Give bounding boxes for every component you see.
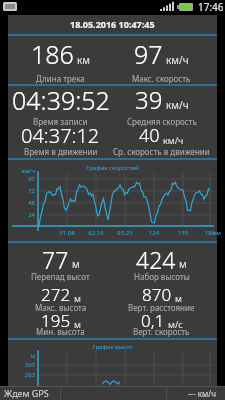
staticText: 93.23 (111, 229, 139, 237)
button[interactable]: 870 (106, 283, 217, 312)
button[interactable]: 97 (106, 37, 217, 74)
staticText: Время записи (33, 116, 88, 127)
staticText: 0,1 (141, 309, 165, 332)
staticText: км (203, 229, 225, 237)
staticText: км (77, 53, 90, 67)
staticText: м (179, 257, 187, 271)
staticText: м/с (168, 318, 183, 330)
staticText: 186 (31, 37, 74, 71)
button[interactable]: 186 (8, 37, 113, 74)
staticText: График скоростей (8, 164, 217, 172)
button[interactable]: 272 (8, 283, 113, 312)
button[interactable]: 0,1 (106, 309, 217, 338)
staticText: Длина трека (36, 73, 85, 84)
staticText: км/ч (166, 98, 189, 112)
staticText: Макс. высота (35, 302, 87, 313)
staticText: 24 (9, 211, 35, 219)
staticText: 48 (9, 199, 35, 207)
button[interactable]: Ждем GPS (4, 387, 49, 399)
button[interactable]: 424 (106, 244, 217, 279)
staticText: 272 (41, 283, 71, 306)
staticText: 195 (41, 309, 71, 332)
staticText: м (74, 318, 81, 330)
staticText: График высот (8, 343, 217, 351)
staticText: 72 (9, 187, 35, 195)
staticText: 40 (139, 123, 160, 148)
staticText: м (72, 257, 80, 271)
button[interactable]: 18.05.2016 10:47:45 (8, 15, 217, 33)
staticText: Макс. скорость (132, 73, 191, 84)
staticText: 870 (142, 283, 172, 306)
staticText: 124 (140, 229, 168, 237)
button[interactable]: График скоростей (8, 161, 217, 238)
staticText: 97 (9, 175, 35, 183)
staticText: Время в движении (24, 146, 98, 157)
staticText: м (9, 352, 35, 360)
staticText: Набор высоты (134, 271, 190, 282)
button[interactable]: 04:37:12 (8, 122, 113, 154)
staticText: 424 (136, 244, 176, 275)
staticText: м (74, 292, 81, 304)
staticText: Перепад высот (31, 271, 90, 282)
staticText: 31.08 (53, 229, 81, 237)
staticText: 18.05.2016 10:47:45 (70, 18, 155, 30)
staticText: м (175, 292, 182, 304)
staticText: км/ч (166, 53, 189, 67)
staticText: 62.16 (82, 229, 110, 237)
staticText: 39 (135, 83, 163, 116)
staticText: 04:37:12 (21, 122, 100, 149)
staticText: Средняя скорость (127, 116, 197, 127)
staticText: 04:39:52 (12, 83, 110, 117)
staticText: 97 (134, 37, 163, 71)
staticText: Мин. высота (36, 326, 85, 337)
staticText: км/ч (9, 167, 35, 175)
staticText: км/ч (163, 134, 184, 146)
staticText: 186 (196, 229, 224, 237)
button[interactable]: График высот (8, 341, 217, 386)
button[interactable]: 39 (106, 83, 217, 119)
staticText: 77 (42, 244, 69, 275)
button[interactable]: 77 (8, 244, 113, 279)
staticText: Ср. скорость в движении (113, 146, 210, 157)
button[interactable]: 04:39:52 (8, 83, 113, 120)
staticText: 17:46 (198, 0, 224, 14)
staticText: 155 (169, 229, 197, 237)
button[interactable]: 195 (8, 309, 113, 338)
staticText: 303 (9, 361, 35, 369)
staticText: Верт. скорость (133, 326, 190, 337)
button[interactable]: --- км/ч (188, 388, 216, 399)
button[interactable]: 40 (106, 123, 217, 153)
staticText: Верт. расстояние (128, 302, 195, 313)
staticText: 263 (9, 371, 35, 379)
